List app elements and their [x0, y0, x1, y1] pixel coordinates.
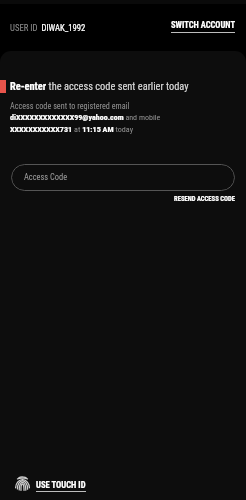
- other: Use Touch ID: [15, 477, 30, 494]
- staticText: Access Code: [24, 172, 68, 182]
- staticText: USE TOUCH ID: [36, 480, 86, 490]
- button[interactable]: SWITCH ACCOUNT: [171, 20, 236, 33]
- staticText: SWITCH ACCOUNT: [171, 20, 236, 30]
- staticText: Access code sent to registered email: [10, 101, 130, 111]
- staticText: diXXXXXXXXXXXXX99@yahoo.com and mobile: [10, 113, 161, 122]
- staticText: USER ID DIWAK_1992: [10, 23, 86, 33]
- staticText: Re-enter the access code sent earlier to…: [10, 80, 189, 92]
- staticText: XXXXXXXXXXX731 at 11:15 AM today: [10, 124, 134, 133]
- button[interactable]: RESEND ACCESS CODE: [174, 195, 235, 203]
- button[interactable]: Use Touch ID: [15, 476, 86, 493]
- button[interactable]: Access Code: [11, 164, 235, 191]
